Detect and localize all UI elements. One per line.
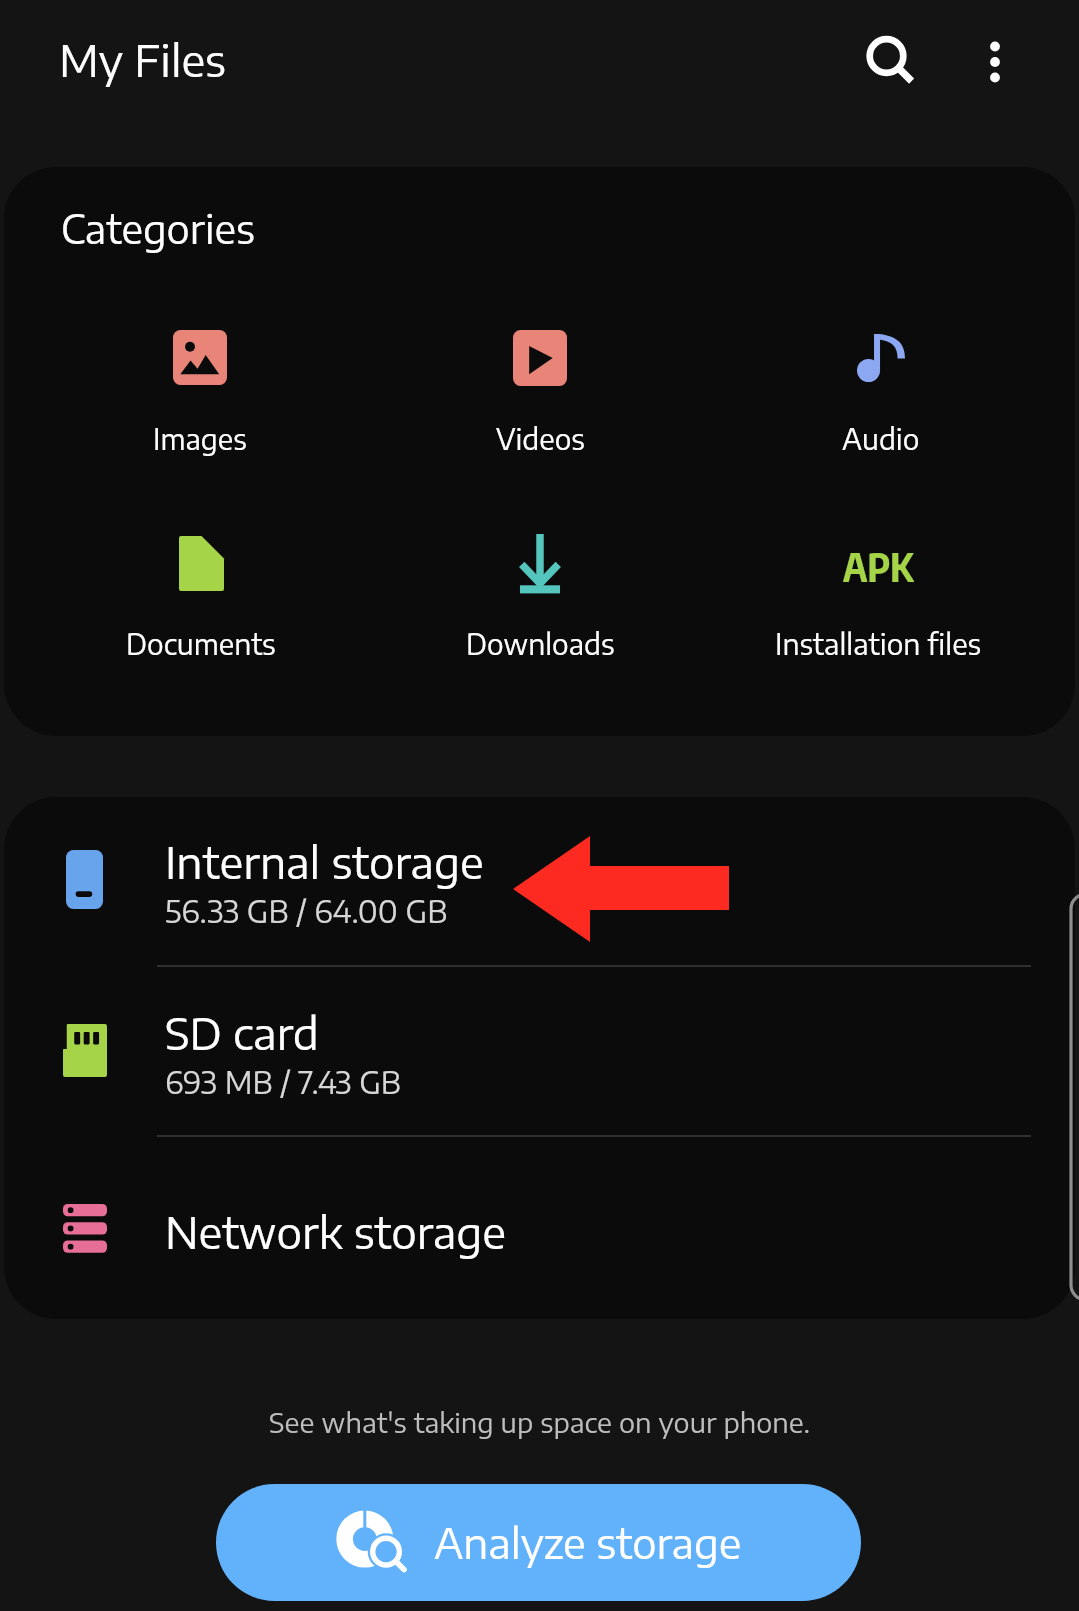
button[interactable]: APK [728,512,1028,670]
staticText: 56.33 GB / 64.00 GB [165,892,448,929]
button[interactable]: Documents [51,506,351,670]
staticText: Videos [496,421,585,456]
button[interactable]: Videos [390,300,690,465]
staticText: Audio [842,421,920,456]
button[interactable]: Internal storage [4,797,1075,966]
staticText: APK [843,542,914,586]
staticText: Installation files [775,626,982,661]
button[interactable]: SD card [4,967,1075,1137]
staticText: Network storage [165,1205,506,1259]
button[interactable]: Analyze storage [216,1484,861,1601]
staticText: Documents [126,626,276,661]
button[interactable]: Network storage [4,1137,1075,1319]
staticText: Analyze storage [434,1517,742,1568]
button[interactable]: Search [843,14,939,110]
staticText: My Files [59,33,226,87]
button[interactable]: Downloads [390,504,690,670]
staticText: See what's taking up space on your phone… [0,1405,1079,1439]
staticText: Categories [61,204,255,253]
staticText: Downloads [466,626,615,661]
staticText: 693 MB / 7.43 GB [165,1063,401,1100]
staticText: Internal storage [165,835,484,889]
button[interactable]: More options [947,14,1043,110]
staticText: Images [153,421,247,456]
button[interactable]: Audio [731,304,1031,465]
staticText: SD card [165,1006,319,1060]
button[interactable]: Images [50,300,350,465]
